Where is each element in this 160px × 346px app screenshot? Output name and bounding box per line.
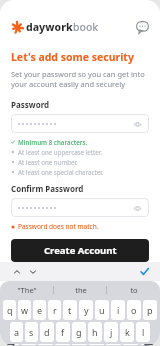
staticText: k xyxy=(125,326,130,338)
button[interactable]: Backspace xyxy=(141,344,158,345)
button[interactable]: Show password xyxy=(132,119,142,129)
staticText: f xyxy=(61,326,65,338)
button[interactable]: Done xyxy=(138,265,151,278)
staticText: g xyxy=(76,326,82,338)
staticText: Password xyxy=(11,99,50,110)
button[interactable]: the xyxy=(54,281,107,299)
button[interactable]: Next field xyxy=(26,265,39,278)
button[interactable]: Shift xyxy=(2,344,19,345)
staticText: a xyxy=(14,326,20,338)
button[interactable]: Show password xyxy=(11,114,149,133)
button[interactable]: f xyxy=(56,322,70,342)
staticText: Password does not match. xyxy=(18,222,99,231)
button[interactable]: Previous field xyxy=(10,265,23,278)
button[interactable]: s xyxy=(25,322,38,342)
button[interactable]: h xyxy=(88,322,102,342)
staticText: h xyxy=(92,326,98,338)
staticText: u xyxy=(99,304,105,316)
button[interactable]: Show password xyxy=(132,203,142,213)
button[interactable]: y xyxy=(79,300,93,320)
staticText: Minimum 8 characters. xyxy=(18,138,88,146)
staticText: i xyxy=(117,304,120,316)
button[interactable]: l xyxy=(136,322,150,342)
button[interactable]: w xyxy=(18,300,31,320)
staticText: daywork xyxy=(26,20,73,34)
staticText: r xyxy=(53,304,57,316)
staticText: the xyxy=(75,285,87,295)
staticText: j xyxy=(110,326,113,338)
button[interactable]: "The" xyxy=(0,281,54,299)
staticText: t xyxy=(68,304,72,316)
staticText: Let's add some security xyxy=(11,50,134,64)
button[interactable]: q xyxy=(3,300,16,320)
staticText: q xyxy=(7,304,13,316)
staticText: to xyxy=(130,285,138,295)
button[interactable]: Support chat xyxy=(134,19,150,35)
button[interactable]: a xyxy=(10,322,23,342)
staticText: At least one special character. xyxy=(18,168,104,176)
staticText: book xyxy=(73,20,99,34)
button[interactable]: k xyxy=(120,322,134,342)
button[interactable]: j xyxy=(104,322,118,342)
button[interactable]: t xyxy=(63,300,77,320)
staticText: Confirm Password xyxy=(11,183,84,194)
button[interactable]: r xyxy=(48,300,61,320)
button[interactable]: i xyxy=(111,300,125,320)
staticText: Set your password so you can get into yo… xyxy=(11,69,145,89)
staticText: Create Account xyxy=(44,244,117,257)
button[interactable]: g xyxy=(72,322,86,342)
button[interactable]: o xyxy=(127,300,141,320)
staticText: w xyxy=(21,304,29,316)
staticText: y xyxy=(84,304,89,316)
staticText: s xyxy=(29,326,34,338)
staticText: At least one uppercase letter. xyxy=(18,148,102,156)
staticText: l xyxy=(142,326,145,338)
button[interactable]: to xyxy=(107,281,160,299)
button[interactable]: u xyxy=(95,300,109,320)
staticText: "The" xyxy=(17,285,37,295)
button[interactable]: p xyxy=(143,300,157,320)
staticText: e xyxy=(37,304,43,316)
button[interactable]: Create Account xyxy=(11,239,149,262)
button[interactable]: e xyxy=(33,300,46,320)
staticText: o xyxy=(131,304,137,316)
staticText: p xyxy=(147,304,153,316)
button[interactable]: d xyxy=(40,322,54,342)
button[interactable]: Show password xyxy=(11,198,149,217)
staticText: At least one number. xyxy=(18,158,78,166)
staticText: d xyxy=(44,326,50,338)
